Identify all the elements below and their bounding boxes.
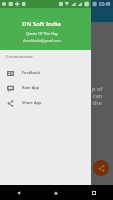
button[interactable]: Home (37, 185, 75, 200)
button[interactable]: Feedback (0, 65, 91, 80)
staticText: Rate App (22, 85, 40, 90)
button[interactable]: Back (0, 185, 37, 200)
button[interactable]: Rate App (0, 80, 91, 95)
button[interactable]: Share App (0, 95, 91, 110)
button[interactable]: Share (93, 160, 109, 176)
staticText: 03:49 (99, 1, 111, 7)
staticText: p of (92, 85, 103, 93)
staticText: Communicate (6, 54, 33, 59)
staticText: Share App (22, 100, 42, 105)
staticText: can (93, 92, 103, 100)
staticText: Quote Of The Day (26, 31, 58, 36)
staticText: Feedback (22, 70, 41, 75)
button[interactable]: Recents (75, 185, 113, 200)
staticText: DN Soft India (22, 19, 61, 27)
staticText: dnsoftindia@gmail.com (23, 38, 61, 43)
staticText: the (93, 99, 102, 107)
